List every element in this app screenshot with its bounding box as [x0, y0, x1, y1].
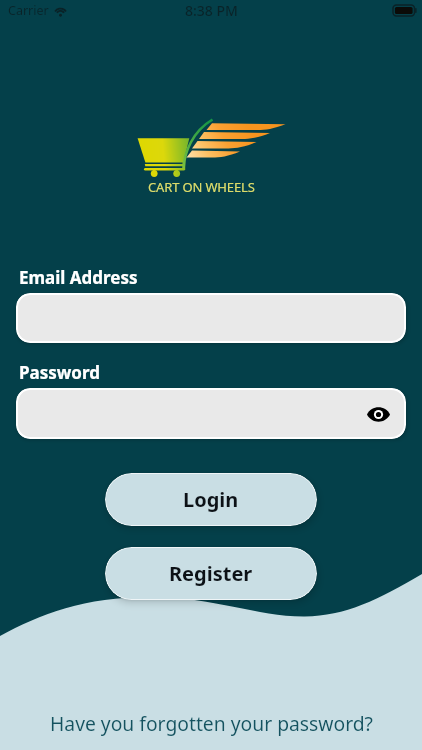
- staticText: Login: [183, 486, 239, 513]
- button[interactable]: Login: [106, 474, 316, 525]
- button[interactable]: Show password: [18, 390, 404, 437]
- button[interactable]: Have you forgotten your password?: [50, 710, 373, 736]
- staticText: Carrier: [8, 2, 49, 19]
- staticText: Register: [169, 560, 253, 587]
- button[interactable]: [18, 295, 404, 341]
- button[interactable]: Register: [106, 548, 316, 599]
- button[interactable]: Show password: [361, 397, 395, 431]
- staticText: CART ON WHEELS: [148, 178, 255, 196]
- staticText: Email Address: [19, 266, 138, 289]
- staticText: Password: [19, 361, 100, 384]
- staticText: 8:38 PM: [185, 1, 238, 20]
